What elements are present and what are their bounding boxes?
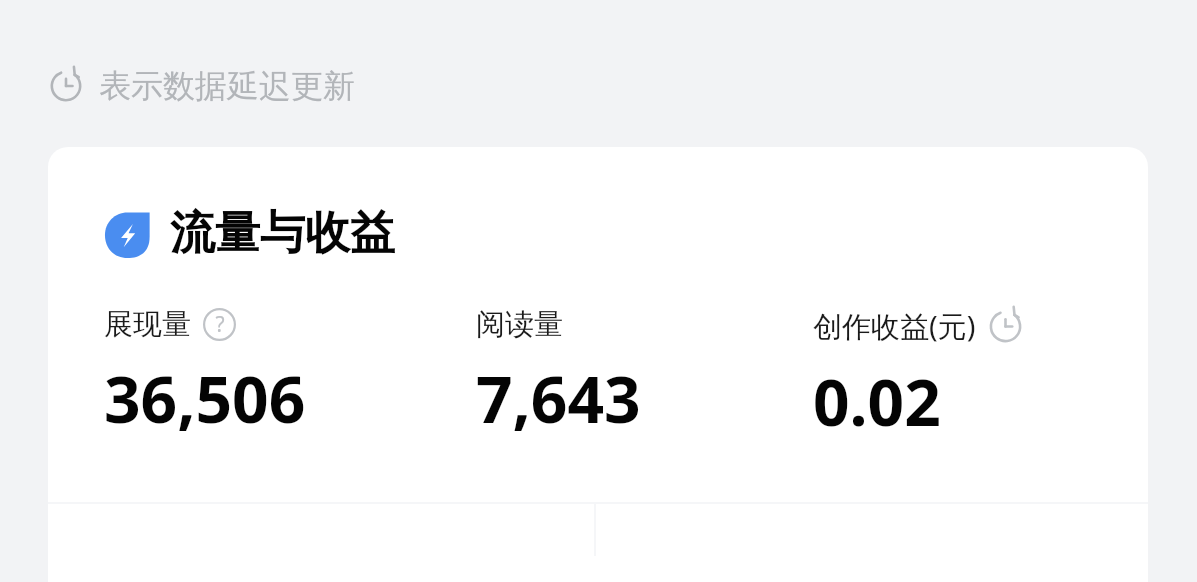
button[interactable]: 帮助说明 [202,307,237,342]
staticText: 7,643 [476,355,641,442]
staticText: 创作收益(元) [813,306,976,346]
staticText: 0.02 [813,358,941,445]
button[interactable]: 阅读量 [476,306,641,442]
button[interactable]: 展现量 [104,306,306,442]
staticText: 表示数据延迟更新 [99,66,355,106]
staticText: 阅读量 [476,306,563,343]
button[interactable]: 创作收益(元) [813,306,1024,445]
staticText: ? [215,310,225,339]
staticText: 流量与收益 [170,205,395,262]
button[interactable]: 表示数据延迟更新 [48,66,355,106]
other: 流量与收益图标 [104,210,152,258]
staticText: 36,506 [104,355,306,442]
staticText: 展现量 [104,306,191,343]
button[interactable]: 流量与收益图标 [48,147,1148,582]
